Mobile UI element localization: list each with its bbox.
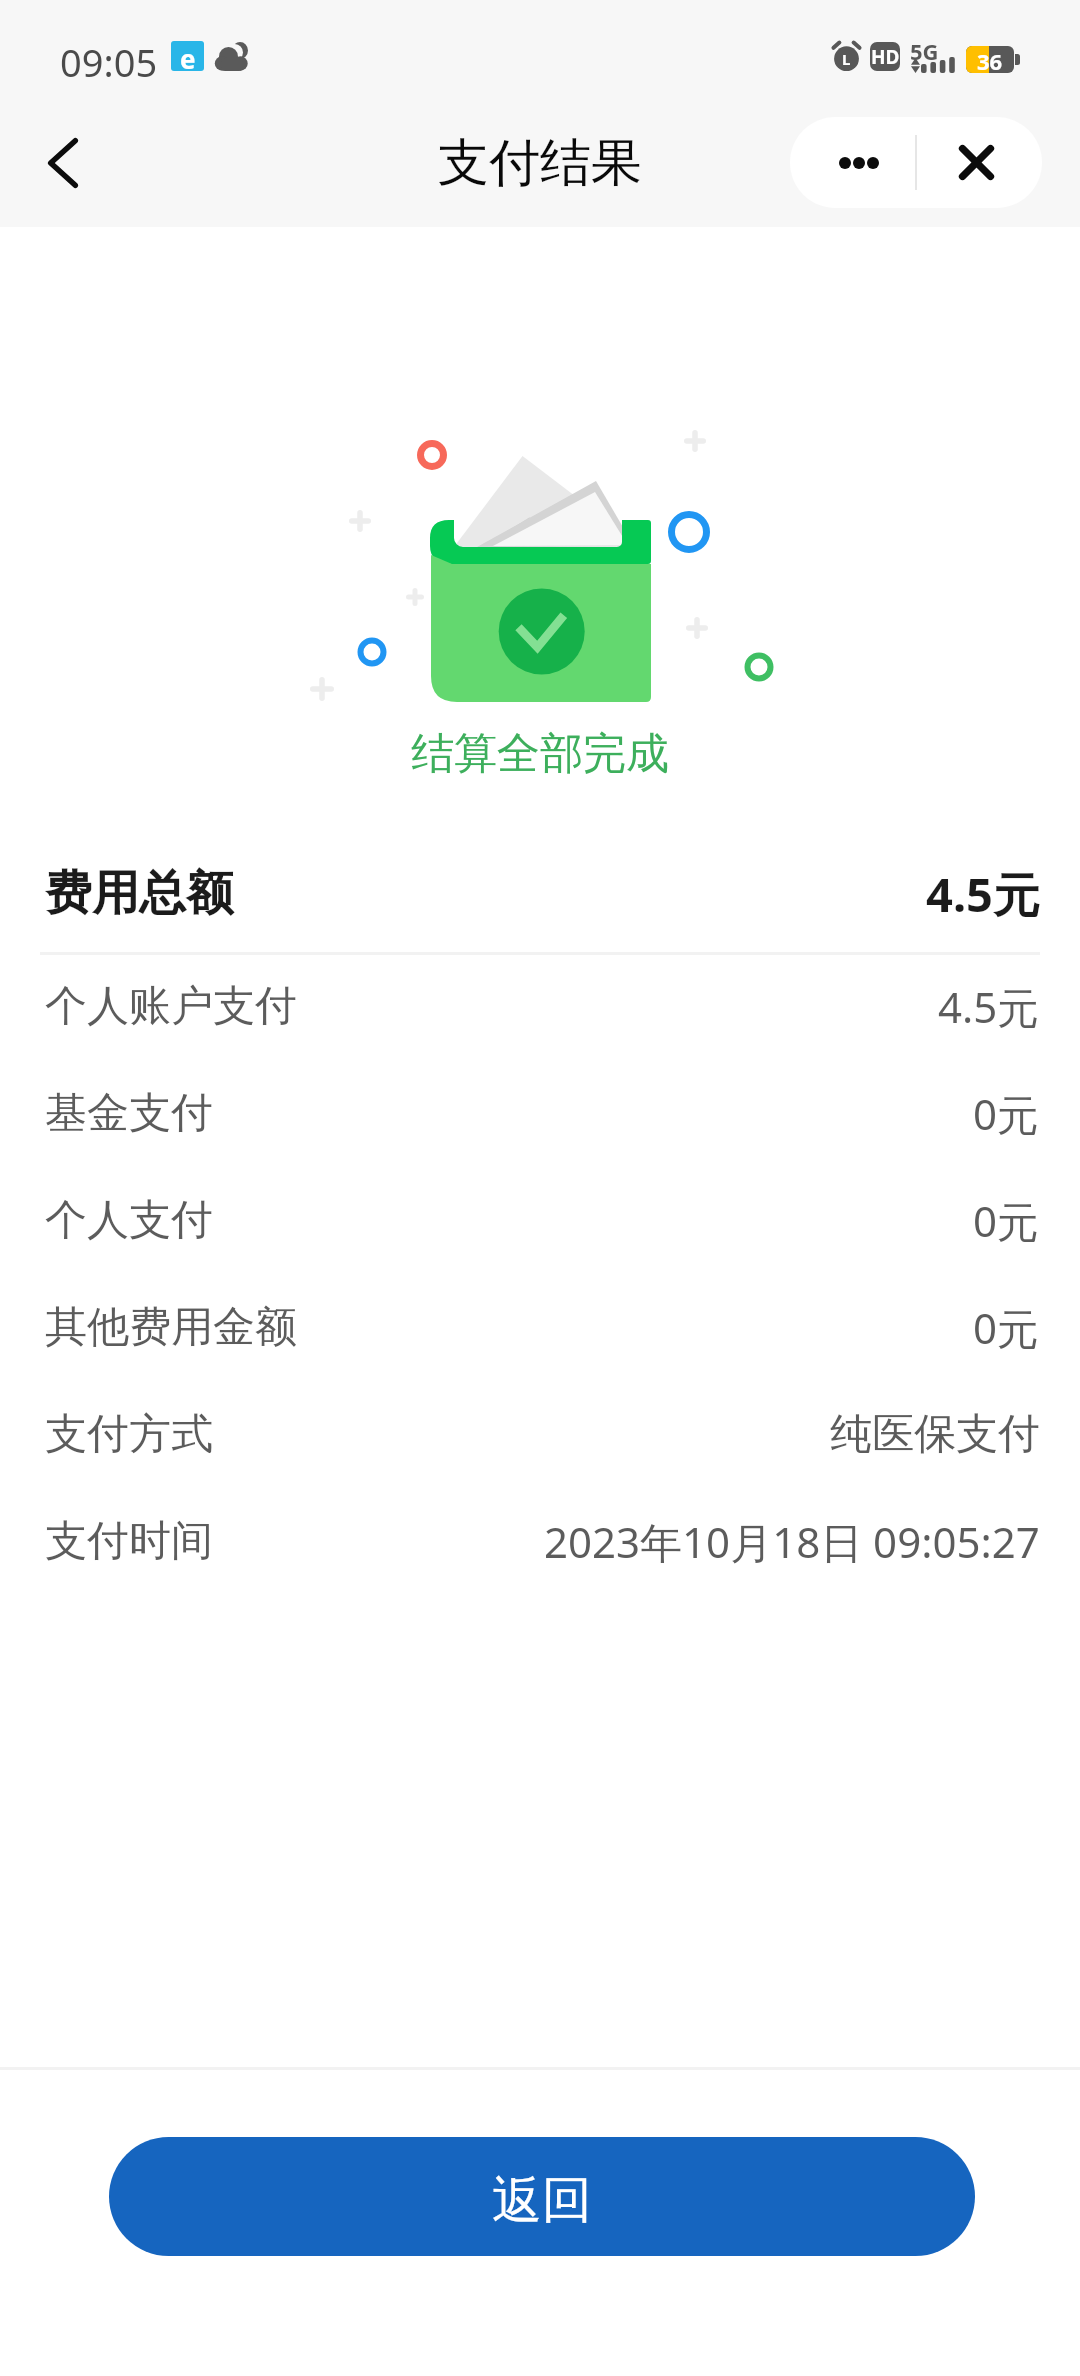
button[interactable]: Close xyxy=(914,117,1039,208)
staticText: 36 xyxy=(977,46,1003,73)
staticText: 结算全部完成 xyxy=(411,727,669,781)
button[interactable]: Back xyxy=(15,115,111,211)
staticText: 09:05 xyxy=(60,36,158,88)
staticText: 支付结果 xyxy=(438,131,642,195)
staticText: 4.5元 xyxy=(926,862,1040,926)
staticText: 支付时间 xyxy=(45,1515,213,1568)
staticText: 其他费用金额 xyxy=(45,1301,297,1354)
staticText: 费用总额 xyxy=(45,864,233,923)
staticText: e xyxy=(180,41,196,71)
staticText: 基金支付 xyxy=(45,1087,213,1140)
staticText: 5G xyxy=(910,36,939,66)
staticText: 0元 xyxy=(973,1299,1040,1356)
staticText: HD xyxy=(871,44,900,70)
staticText: 4.5元 xyxy=(938,978,1040,1035)
staticText: 纯医保支付 xyxy=(830,1408,1040,1461)
staticText: 返回 xyxy=(492,2169,592,2232)
staticText: 支付方式 xyxy=(45,1408,213,1461)
staticText: 0元 xyxy=(973,1192,1040,1249)
staticText: 个人账户支付 xyxy=(45,980,297,1033)
button[interactable]: 返回 xyxy=(109,2137,975,2256)
staticText: L xyxy=(842,49,851,69)
button[interactable]: More options xyxy=(790,117,915,208)
staticText: 0元 xyxy=(973,1085,1040,1142)
staticText: 2023年10月18日 09:05:27 xyxy=(544,1513,1040,1570)
staticText: 个人支付 xyxy=(45,1194,213,1247)
